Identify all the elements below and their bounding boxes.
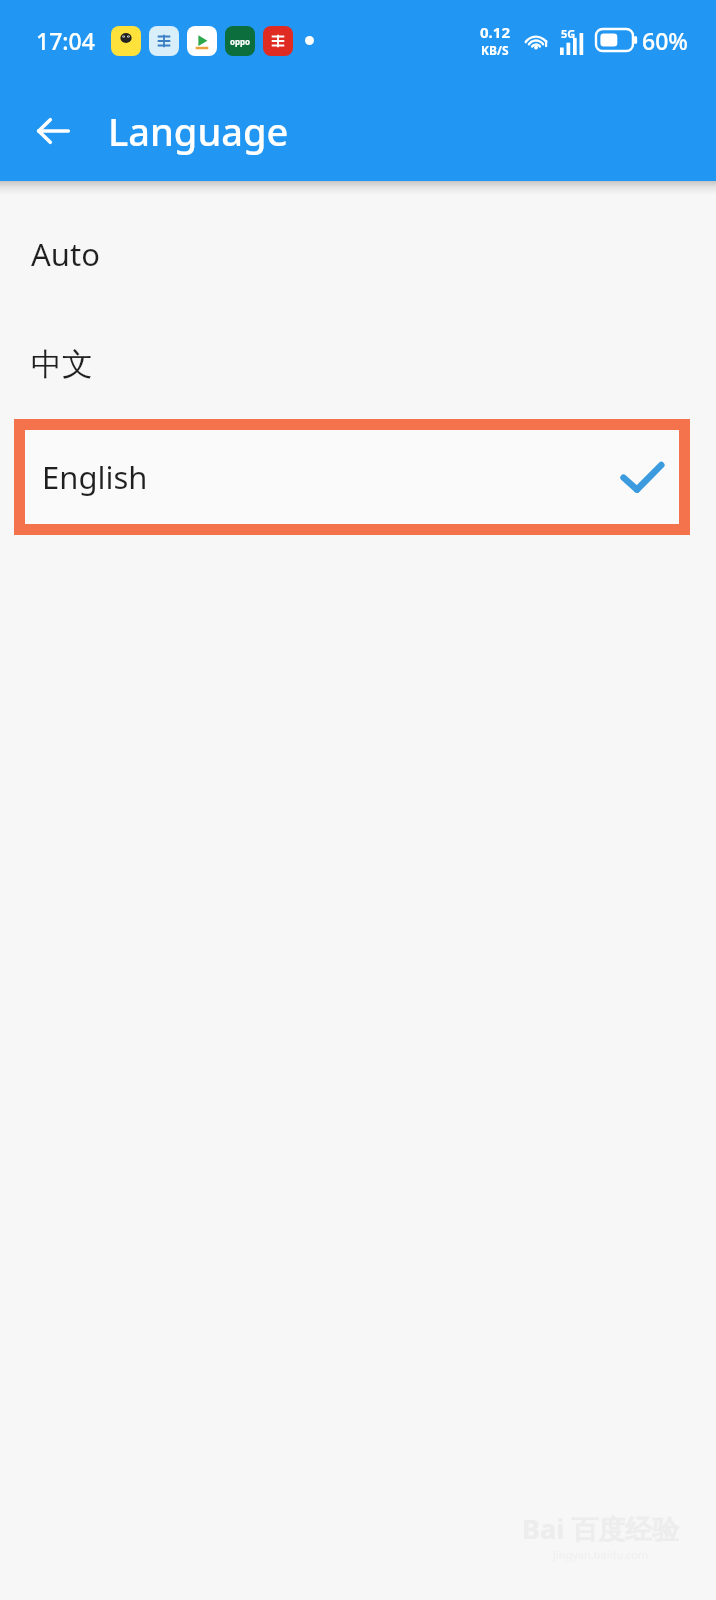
staticText: KB/S [481, 42, 509, 58]
staticText: 60% [642, 25, 688, 56]
button[interactable]: Back [20, 98, 86, 164]
staticText: 中文 [31, 345, 93, 384]
staticText: English [42, 456, 148, 498]
staticText: oppo [230, 36, 251, 47]
staticText: Language [108, 105, 289, 157]
staticText: 0.12 [480, 22, 510, 42]
staticText: Bai 百度经验 [522, 1510, 680, 1547]
button[interactable]: 中文 [0, 309, 716, 419]
button[interactable]: English [25, 430, 679, 524]
staticText: 5G [561, 26, 576, 41]
staticText: Auto [31, 233, 100, 275]
staticText: 17:04 [36, 25, 95, 56]
button[interactable]: Auto [0, 199, 716, 309]
